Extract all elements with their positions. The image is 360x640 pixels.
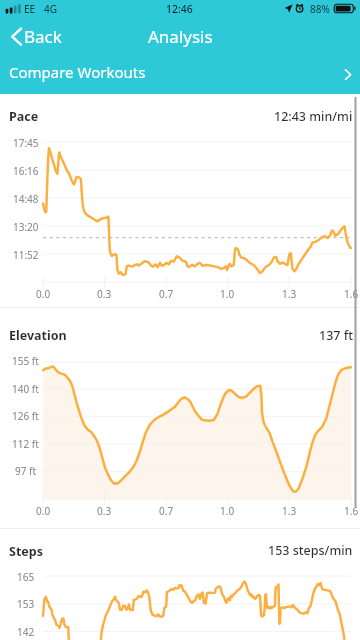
staticText: 1.6 [344, 287, 359, 301]
staticText: 11:52 [13, 248, 39, 262]
button[interactable] [0, 52, 360, 94]
staticText: 165 [17, 570, 35, 584]
staticText: Pace [9, 108, 39, 125]
staticText: Back [24, 25, 62, 48]
staticText: 153 [17, 597, 35, 611]
staticText: 17:45 [13, 136, 39, 150]
staticText: Elevation [9, 327, 67, 344]
staticText: 12:43 min/mi [274, 108, 353, 125]
button[interactable] [6, 22, 66, 51]
staticText: 142 [17, 625, 35, 639]
staticText: 140 ft [12, 382, 39, 396]
staticText: 97 ft [15, 464, 37, 478]
staticText: 126 ft [12, 409, 39, 423]
staticText: 14:48 [13, 192, 39, 206]
staticText: 4G [44, 2, 57, 16]
staticText: 1.3 [282, 287, 297, 301]
staticText: 112 ft [12, 437, 39, 451]
staticText: 0.0 [36, 504, 51, 518]
staticText: 0.3 [97, 287, 112, 301]
staticText: Analysis [148, 25, 213, 48]
staticText: 0.7 [159, 504, 174, 518]
staticText: 155 ft [12, 354, 39, 368]
staticText: 0.7 [159, 287, 174, 301]
staticText: 153 steps/min [268, 542, 353, 559]
staticText: 1.6 [344, 504, 359, 518]
staticText: EE [24, 2, 36, 16]
staticText: 13:20 [13, 220, 39, 234]
staticText: 16:16 [13, 164, 39, 178]
staticText: 1.0 [220, 504, 235, 518]
staticText: 0.0 [36, 287, 51, 301]
staticText: Compare Workouts [9, 62, 146, 82]
staticText: 137 ft [319, 327, 353, 344]
other: Compare Workouts [340, 64, 360, 86]
staticText: 1.0 [220, 287, 235, 301]
staticText: Steps [9, 543, 43, 560]
staticText: 0.3 [97, 504, 112, 518]
staticText: 12:46 [166, 2, 193, 16]
staticText: 1.3 [282, 504, 297, 518]
staticText: 88% [310, 2, 330, 16]
